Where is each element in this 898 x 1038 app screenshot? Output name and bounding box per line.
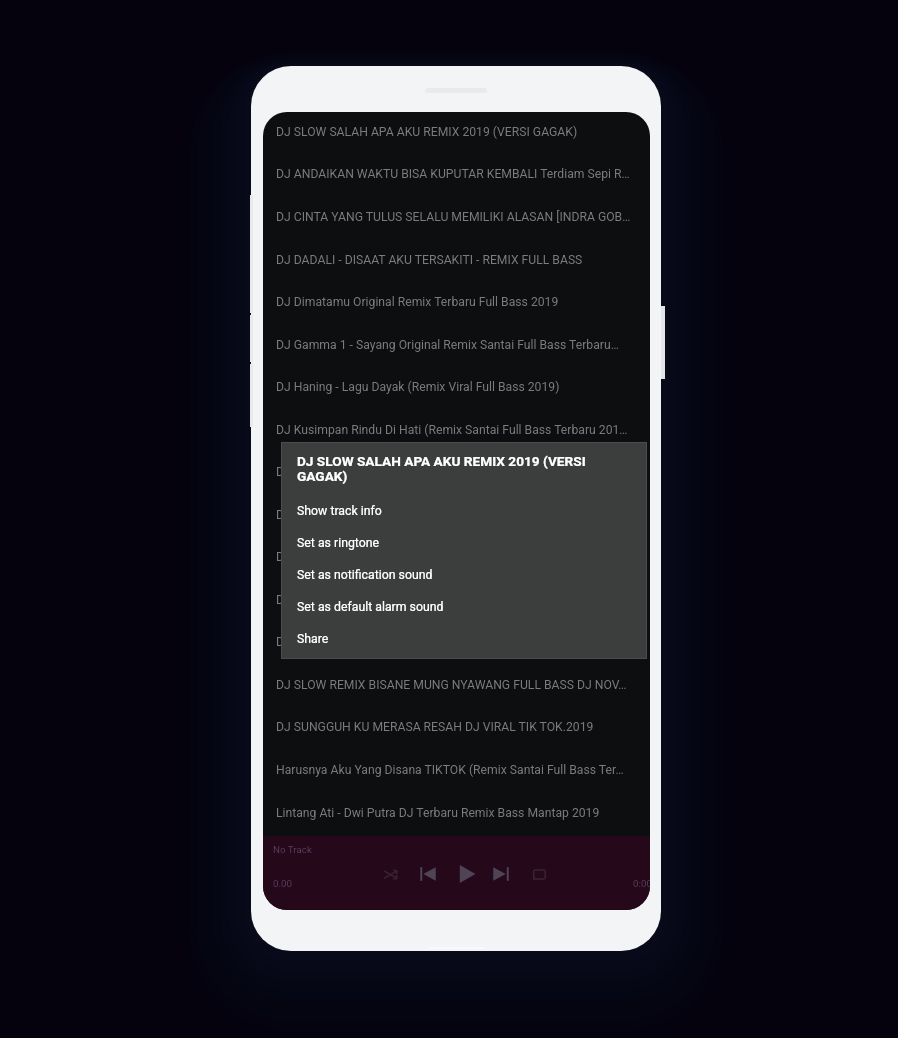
staticText: DJ Sayang Mantan Remix Slow Full Bass Te…: [276, 635, 598, 649]
staticText: Lintang Ati - Dwi Putra DJ Terbaru Remix…: [276, 806, 600, 820]
button[interactable]: Set as notification sound: [281, 559, 647, 591]
button[interactable]: DJ DADALI - DISAAT AKU TERSAKITI - REMIX…: [263, 238, 650, 281]
button[interactable]: DJ SLOW REMIX BISANE MUNG NYAWANG FULL B…: [263, 663, 650, 706]
staticText: DJ SUNGGUH KU MERASA RESAH DJ VIRAL TIK …: [276, 720, 594, 734]
staticText: DJ Ninja Opo Vespa Remix Full Bass Terba…: [276, 593, 585, 607]
button[interactable]: DJ Haning - Lagu Dayak (Remix Viral Full…: [263, 365, 650, 408]
staticText: DJ Memori Berkasih Remix Santai Full Bas…: [276, 550, 587, 564]
staticText: Set as default alarm sound: [297, 600, 444, 614]
button[interactable]: DJ Memori Berkasih Remix Santai Full Bas…: [263, 535, 650, 578]
staticText: Share: [297, 632, 329, 646]
button[interactable]: DJ Dimatamu Original Remix Terbaru Full …: [263, 280, 650, 323]
button[interactable]: DJ ANDAIKAN WAKTU BISA KUPUTAR KEMBALI T…: [263, 152, 650, 195]
button[interactable]: DJ Gamma 1 - Sayang Original Remix Santa…: [263, 323, 650, 366]
button[interactable]: Show track info: [281, 495, 647, 527]
button[interactable]: Share: [281, 623, 647, 655]
staticText: No Track: [273, 844, 312, 855]
staticText: DJ DADALI - DISAAT AKU TERSAKITI - REMIX…: [276, 253, 583, 267]
staticText: DJ SLOW SALAH APA AKU REMIX 2019 (VERSI …: [297, 453, 602, 485]
button[interactable]: DJ Sayang Mantan Remix Slow Full Bass Te…: [263, 620, 650, 663]
staticText: 0:00: [633, 878, 650, 889]
staticText: DJ Gamma 1 - Sayang Original Remix Santa…: [276, 338, 619, 352]
button[interactable]: DJ Lathi Remix Viral Tik Tok Full Bass T…: [263, 493, 650, 536]
staticText: Set as notification sound: [297, 568, 433, 582]
staticText: DJ SLOW SALAH APA AKU REMIX 2019 (VERSI …: [276, 125, 578, 139]
button[interactable]: Previous: [414, 860, 442, 888]
staticText: DJ Haning - Lagu Dayak (Remix Viral Full…: [276, 380, 560, 394]
button[interactable]: DJ SLOW SALAH APA AKU REMIX 2019 (VERSI …: [263, 112, 650, 153]
staticText: DJ CINTA YANG TULUS SELALU MEMILIKI ALAS…: [276, 210, 631, 224]
staticText: DJ Kusimpan Rindu Di Hati (Remix Santai …: [276, 423, 628, 437]
button[interactable]: Harusnya Aku Yang Disana TIKTOK (Remix S…: [263, 748, 650, 791]
staticText: DJ Dimatamu Original Remix Terbaru Full …: [276, 295, 559, 309]
staticText: 0.00: [273, 878, 293, 889]
button[interactable]: DJ Lagi Syantik Remix Santai Full Bass T…: [263, 450, 650, 493]
staticText: Show track info: [297, 504, 382, 518]
staticText: DJ SLOW REMIX BISANE MUNG NYAWANG FULL B…: [276, 678, 627, 692]
button[interactable]: Lintang Ati - Dwi Putra DJ Terbaru Remix…: [263, 791, 650, 834]
button[interactable]: DJ CINTA YANG TULUS SELALU MEMILIKI ALAS…: [263, 195, 650, 238]
button[interactable]: Set as default alarm sound: [281, 591, 647, 623]
staticText: DJ Lagi Syantik Remix Santai Full Bass T…: [276, 465, 560, 479]
staticText: DJ ANDAIKAN WAKTU BISA KUPUTAR KEMBALI T…: [276, 167, 630, 181]
button[interactable]: Repeat: [525, 860, 553, 888]
staticText: Harusnya Aku Yang Disana TIKTOK (Remix S…: [276, 763, 624, 777]
staticText: Set as ringtone: [297, 536, 380, 550]
button[interactable]: Shuffle: [376, 860, 404, 888]
button[interactable]: Play: [453, 860, 481, 888]
button[interactable]: Set as ringtone: [281, 527, 647, 559]
button[interactable]: DJ Kusimpan Rindu Di Hati (Remix Santai …: [263, 408, 650, 451]
button[interactable]: DJ SUNGGUH KU MERASA RESAH DJ VIRAL TIK …: [263, 705, 650, 748]
button[interactable]: DJ Ninja Opo Vespa Remix Full Bass Terba…: [263, 578, 650, 621]
button[interactable]: Next: [487, 860, 515, 888]
staticText: DJ Lathi Remix Viral Tik Tok Full Bass T…: [276, 508, 554, 522]
